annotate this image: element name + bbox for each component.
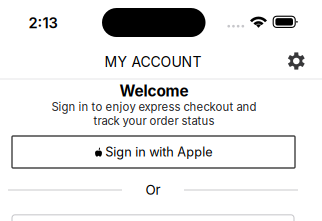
- staticText: MY ACCOUNT: [104, 53, 201, 70]
- staticText: Sign in to enjoy express checkout and: [51, 100, 256, 114]
- button[interactable]: Settings: [281, 47, 312, 75]
- staticText: 2:13: [28, 14, 57, 32]
- button[interactable]: Sign in with Apple: [12, 136, 295, 168]
- staticText: Sign in with Apple: [105, 144, 212, 160]
- staticText: Welcome: [119, 82, 188, 100]
- staticText: Or: [145, 182, 160, 198]
- staticText: track your order status: [93, 114, 214, 128]
